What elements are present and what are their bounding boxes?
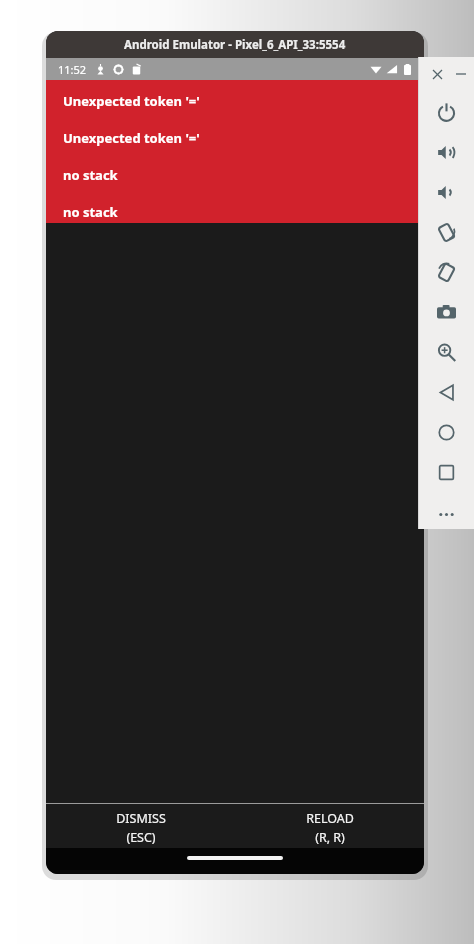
staticText: RELOAD [306, 810, 354, 827]
button[interactable]: Overview [427, 453, 465, 491]
button[interactable]: Rotate left [427, 213, 465, 251]
button[interactable]: Volume up [427, 133, 465, 171]
button[interactable]: Volume down [427, 173, 465, 211]
button[interactable]: Zoom [427, 333, 465, 371]
button[interactable]: Rotate right [427, 253, 465, 291]
staticText: 11:52 [58, 62, 87, 77]
staticText: Unexpected token '=' [63, 129, 200, 147]
button[interactable]: Home [427, 413, 465, 451]
staticText: no stack [63, 203, 118, 221]
button[interactable]: Minimize [451, 64, 471, 84]
staticText: (R, R) [315, 829, 345, 846]
button[interactable]: Take screenshot [427, 293, 465, 331]
button[interactable]: Power [427, 93, 465, 131]
button[interactable]: DISMISS [46, 804, 235, 848]
staticText: DISMISS [116, 810, 166, 827]
staticText: no stack [63, 166, 118, 184]
button[interactable]: More [427, 495, 465, 533]
button[interactable]: Close [427, 64, 447, 84]
staticText: (ESC) [126, 829, 156, 846]
staticText: Android Emulator - Pixel_6_API_33:5554 [124, 37, 346, 53]
button[interactable]: Back [427, 373, 465, 411]
staticText: Unexpected token '=' [63, 92, 200, 110]
button[interactable]: RELOAD [235, 804, 424, 848]
